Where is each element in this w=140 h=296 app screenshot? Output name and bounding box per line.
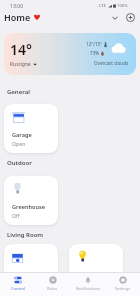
staticText: LTE bbox=[99, 3, 106, 9]
button[interactable]: Settings bbox=[105, 273, 140, 296]
staticText: 14° bbox=[10, 40, 32, 59]
staticText: Rustigne bbox=[10, 61, 31, 68]
staticText: General bbox=[7, 88, 30, 96]
button[interactable]: Rules bbox=[35, 273, 70, 296]
button[interactable]: Add device bbox=[124, 11, 137, 24]
staticText: Open bbox=[12, 140, 26, 147]
staticText: Overcast clouds bbox=[94, 60, 129, 66]
button[interactable]: Home bbox=[4, 11, 40, 23]
button[interactable]: Expand bbox=[109, 12, 121, 24]
staticText: Rules bbox=[47, 286, 58, 291]
button[interactable]: Control bbox=[0, 273, 35, 296]
staticText: Blinds bbox=[12, 271, 29, 279]
staticText: Living Room bbox=[7, 231, 44, 239]
staticText: Home bbox=[4, 11, 31, 23]
button[interactable]: Garage bbox=[4, 104, 58, 153]
staticText: Off bbox=[12, 212, 20, 219]
staticText: Settings bbox=[115, 286, 131, 291]
staticText: 73% bbox=[90, 50, 100, 56]
staticText: Lamp bbox=[77, 271, 93, 279]
staticText: Notifications bbox=[76, 286, 100, 291]
staticText: 13:00 bbox=[10, 2, 24, 9]
staticText: Outdoor bbox=[7, 159, 32, 167]
staticText: 12°/15° bbox=[86, 41, 103, 47]
button[interactable]: Greenhouse bbox=[4, 176, 58, 225]
button[interactable]: 14° bbox=[4, 33, 136, 75]
button[interactable]: Lamp bbox=[69, 244, 123, 293]
staticText: Open bbox=[12, 280, 26, 287]
button[interactable]: Blinds bbox=[4, 244, 58, 293]
staticText: Control bbox=[11, 286, 25, 291]
button[interactable]: Notifications bbox=[70, 273, 105, 296]
staticText: Greenhouse bbox=[12, 203, 46, 211]
staticText: 100% bbox=[117, 3, 128, 9]
staticText: Garage bbox=[12, 131, 32, 139]
